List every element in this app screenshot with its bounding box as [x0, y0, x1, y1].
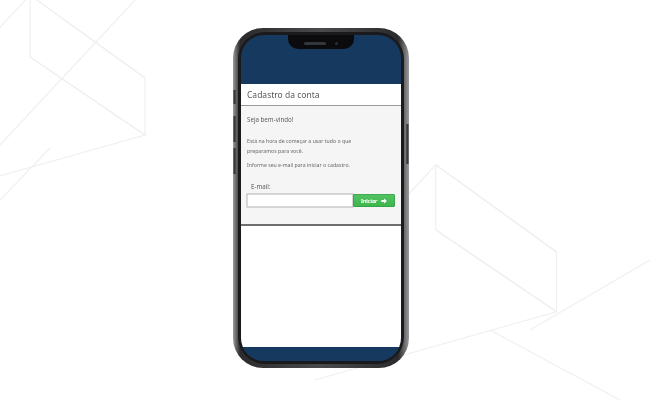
- button[interactable]: Cadastro da conta: [241, 84, 401, 105]
- staticText: Cadastro da conta: [247, 89, 320, 101]
- staticText: Seja bem-vindo!: [247, 115, 294, 123]
- staticText: Informe seu e-mail para iniciar o cadast…: [247, 161, 350, 168]
- staticText: Está na hora de começar a usar tudo o qu…: [247, 137, 352, 154]
- staticText: Iniciar: [361, 197, 378, 205]
- staticText: E-mail:: [251, 182, 271, 190]
- button[interactable]: [247, 194, 353, 207]
- button[interactable]: Iniciar: [353, 194, 395, 207]
